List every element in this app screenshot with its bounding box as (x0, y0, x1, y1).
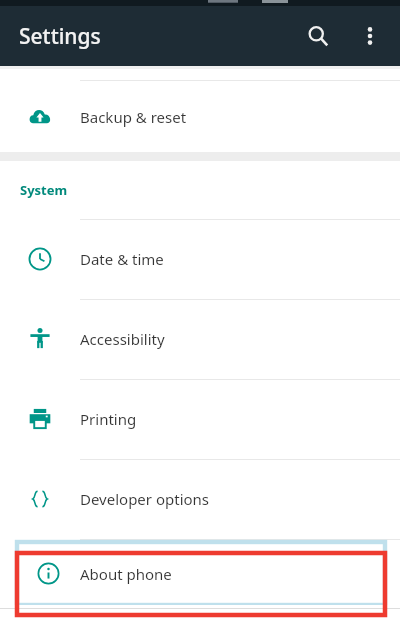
button[interactable]: More options (348, 14, 392, 58)
staticText: Developer options (80, 489, 210, 509)
staticText: Printing (80, 409, 137, 429)
button[interactable]: Search (296, 14, 340, 58)
button[interactable]: Backup & reset (0, 81, 400, 152)
button[interactable]: Printing (0, 379, 400, 459)
button[interactable]: About phone (17, 542, 385, 605)
button[interactable]: Accessibility (0, 299, 400, 379)
staticText: Date & time (80, 249, 164, 269)
staticText: Accessibility (80, 329, 165, 349)
staticText: Settings (19, 22, 101, 51)
button[interactable]: Developer options (0, 459, 400, 539)
staticText: About phone (80, 564, 172, 584)
staticText: Backup & reset (80, 107, 187, 127)
button[interactable]: Date & time (0, 219, 400, 299)
staticText: System (20, 181, 68, 199)
